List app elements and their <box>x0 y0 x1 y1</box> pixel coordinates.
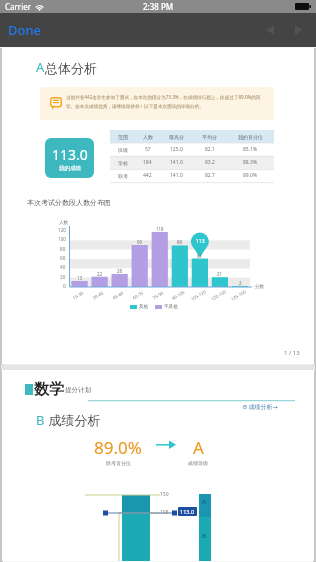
staticText: 20 <box>60 274 66 280</box>
staticText: Done <box>8 21 42 39</box>
staticText: 成绩等级 <box>188 460 208 466</box>
staticText: 113.0 <box>180 508 195 515</box>
staticText: 90 <box>137 239 143 245</box>
staticText: 联考百分位 <box>106 460 131 466</box>
staticText: 28 <box>117 268 123 274</box>
staticText: 80 <box>60 246 66 252</box>
staticText: 40 <box>60 264 66 270</box>
staticText: 60 <box>60 255 66 261</box>
staticText: 范围 <box>118 134 128 140</box>
staticText: 0 <box>63 283 66 289</box>
staticText: 15-30 <box>71 289 85 301</box>
staticText: 2 <box>239 280 242 286</box>
staticText: 61 <box>197 253 203 259</box>
staticText: 118 <box>156 226 164 232</box>
staticText: Carrier <box>5 1 32 12</box>
staticText: 成绩分析 <box>45 411 101 429</box>
staticText: 班级 <box>118 147 128 153</box>
staticText: 数学 <box>34 380 64 399</box>
staticText: 22 <box>97 271 103 277</box>
button[interactable]: B 成绩分析→ <box>243 403 278 411</box>
staticText: 21 <box>217 271 223 277</box>
staticText: 13 <box>77 275 83 281</box>
staticText: 1 / 13 <box>284 349 300 357</box>
staticText: 120-135 <box>210 288 227 302</box>
staticText: 总体分析 <box>45 60 97 76</box>
staticText: 85.1% <box>243 146 258 153</box>
staticText: 分数 <box>255 284 265 290</box>
staticText: 平均分 <box>202 134 217 140</box>
staticText: 学校 <box>118 160 128 166</box>
staticText: 120 <box>58 227 66 233</box>
staticText: 不及格 <box>164 304 178 310</box>
staticText: 184 <box>143 159 152 166</box>
staticText: 125.0 <box>170 146 183 153</box>
staticText: 最高分 <box>169 134 184 140</box>
staticText: 我的成绩 <box>59 165 81 172</box>
staticText: 30-45 <box>91 289 105 301</box>
button[interactable]: Done <box>0 15 50 45</box>
staticText: 及格 <box>139 304 149 310</box>
staticText: 82.1 <box>205 146 215 153</box>
staticText: 113.0 <box>52 145 88 164</box>
staticText: 我的百分位 <box>238 134 263 140</box>
staticText: 本次考试分数段人数分布图 <box>27 198 111 207</box>
staticText: 88.3% <box>243 159 258 166</box>
staticText: 90-105 <box>170 289 185 301</box>
staticText: B <box>202 532 206 540</box>
staticText: B 成绩分析→ <box>243 403 278 411</box>
staticText: 人数 <box>59 220 69 226</box>
staticText: 100 <box>58 236 66 242</box>
button[interactable]: Previous page <box>259 13 281 47</box>
button[interactable]: Next page <box>288 13 310 47</box>
staticText: 2:38 PM <box>143 1 174 12</box>
staticText: 57 <box>145 146 151 153</box>
staticText: 75-90 <box>151 289 165 301</box>
staticText: 442 <box>143 172 152 179</box>
staticText: 83.2 <box>205 159 215 166</box>
staticText: 89 <box>177 239 183 245</box>
staticText: A <box>202 498 206 506</box>
staticText: A <box>36 58 45 76</box>
staticText: 108 <box>160 509 169 516</box>
staticText: 联考 <box>118 173 128 179</box>
staticText: 60-75 <box>131 289 145 301</box>
staticText: 45-60 <box>111 289 125 301</box>
staticText: 89.0% <box>243 172 258 179</box>
staticText: 82.7 <box>205 172 215 179</box>
staticText: 150 <box>160 491 169 498</box>
staticText: 提分计划 <box>65 386 91 394</box>
staticText: 141.0 <box>170 159 183 166</box>
staticText: 89.0% <box>94 436 142 459</box>
staticText: 141.0 <box>170 172 183 179</box>
staticText: 当前共有442名学生参加了测试，你本次的得分为75.3%，在成绩排行榜上，你超过… <box>66 94 268 109</box>
staticText: 135-150 <box>230 288 247 302</box>
staticText: 人数 <box>143 134 153 140</box>
staticText: 113 <box>196 238 205 245</box>
staticText: 105-120 <box>190 288 207 302</box>
staticText: B <box>36 411 45 429</box>
staticText: A <box>193 436 204 459</box>
